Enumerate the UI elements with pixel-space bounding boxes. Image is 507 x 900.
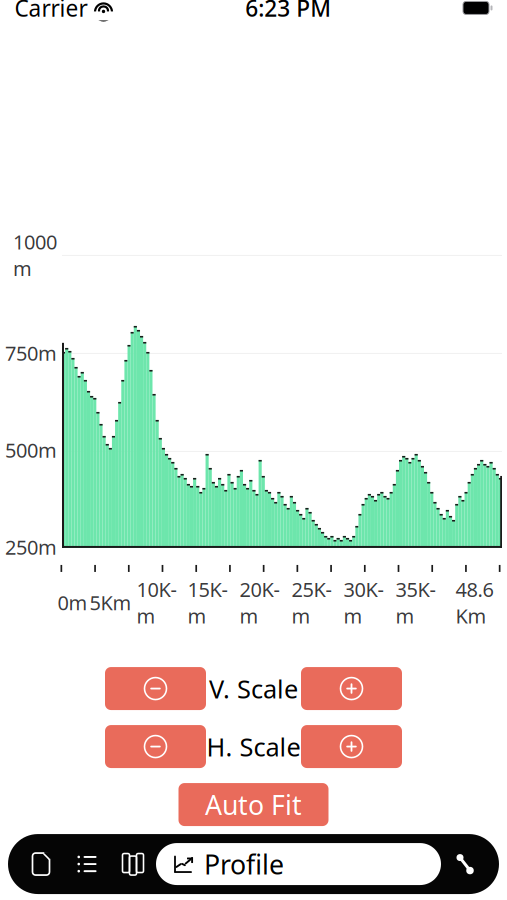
button[interactable]: Increase H. Scale — [301, 725, 402, 768]
staticText: Carrier — [14, 0, 87, 23]
staticText: Auto Fit — [205, 787, 302, 822]
button[interactable]: Decrease V. Scale — [105, 667, 206, 710]
staticText: Profile — [204, 846, 284, 882]
staticText: H. Scale — [206, 730, 300, 763]
staticText: 750m — [5, 340, 57, 366]
staticText: 25Km — [291, 576, 331, 629]
button[interactable]: Route — [453, 851, 477, 877]
staticText: V. Scale — [209, 672, 298, 705]
button[interactable]: List — [75, 852, 99, 876]
button[interactable]: Auto Fit — [178, 783, 328, 826]
staticText: 1000m — [13, 228, 57, 281]
button[interactable]: Profile — [156, 843, 441, 885]
staticText: 35Km — [395, 576, 435, 629]
staticText: 20Km — [239, 576, 279, 629]
staticText: 30Km — [343, 576, 383, 629]
staticText: 500m — [5, 437, 57, 463]
staticText: 5Km — [89, 589, 131, 616]
staticText: 250m — [5, 534, 57, 560]
button[interactable]: Decrease H. Scale — [105, 725, 206, 768]
staticText: 10Km — [136, 576, 176, 629]
staticText: 48.6Km — [455, 576, 493, 629]
button[interactable]: Increase V. Scale — [301, 667, 402, 710]
staticText: 0m — [57, 589, 87, 616]
button[interactable]: Documents — [29, 852, 53, 876]
button[interactable]: Map — [121, 852, 145, 876]
staticText: 15Km — [187, 576, 227, 629]
staticText: 6:23 PM — [245, 0, 331, 23]
